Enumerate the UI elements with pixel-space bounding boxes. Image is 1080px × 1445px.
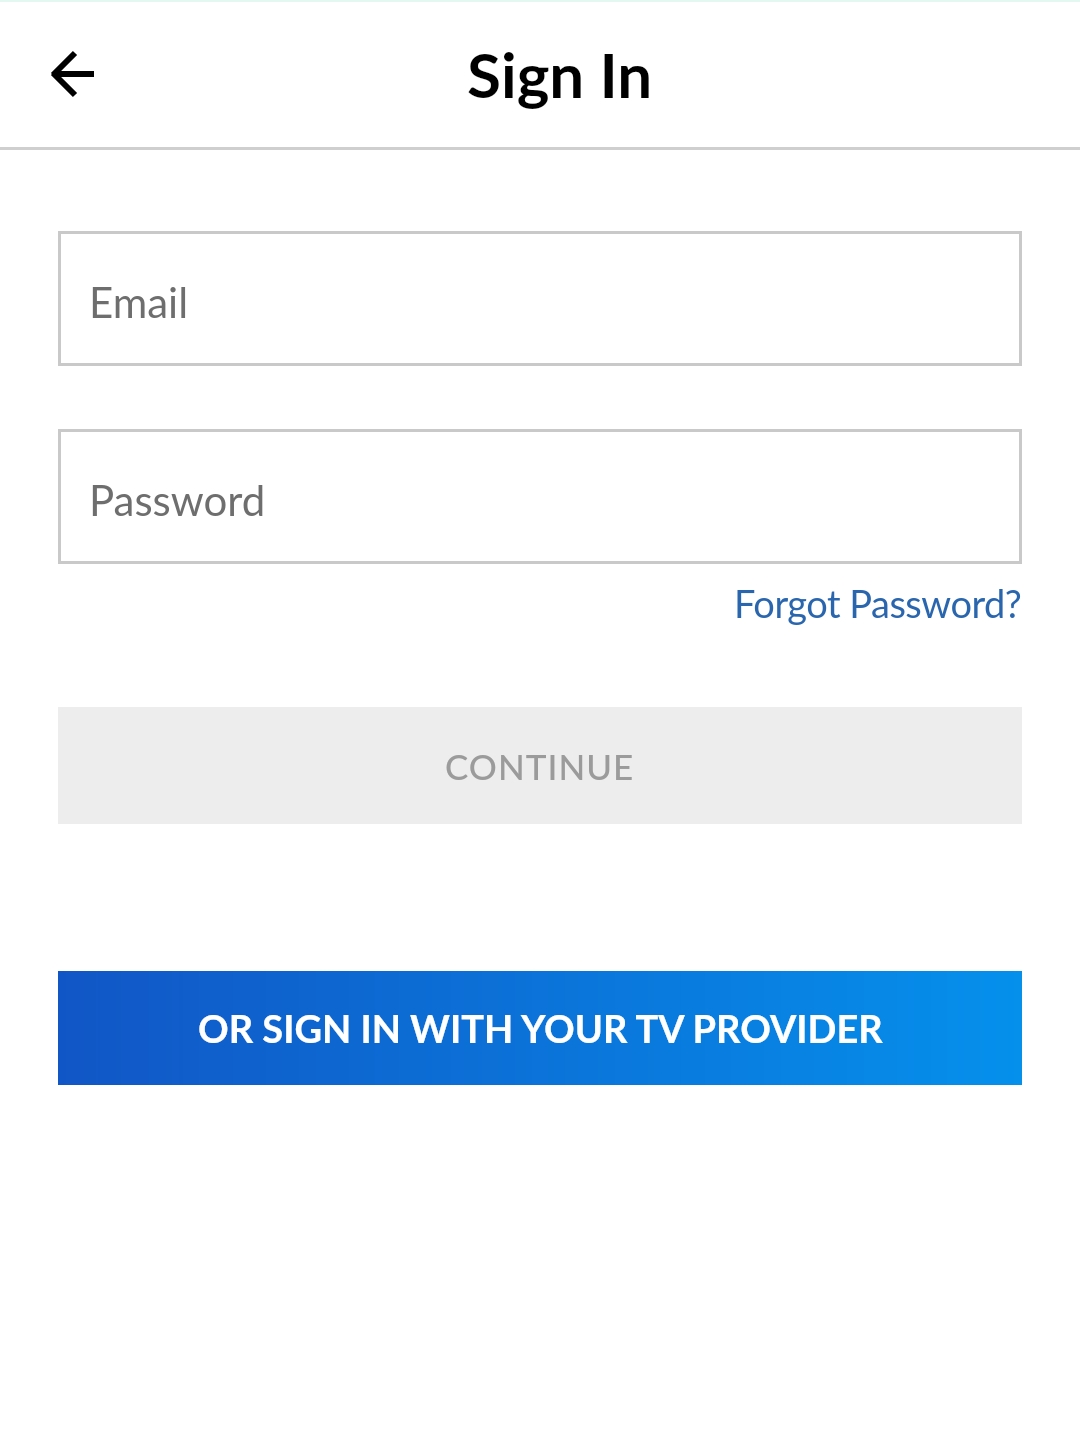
button[interactable]: Password: [58, 429, 1022, 564]
button[interactable]: Email: [58, 231, 1022, 366]
staticText: CONTINUE: [445, 745, 635, 787]
staticText: OR SIGN IN WITH YOUR TV PROVIDER: [198, 1005, 883, 1051]
staticText: Password: [89, 475, 266, 525]
staticText: Sign In: [467, 37, 653, 111]
button[interactable]: [38, 38, 110, 110]
button[interactable]: CONTINUE: [58, 707, 1022, 824]
button[interactable]: OR SIGN IN WITH YOUR TV PROVIDER: [58, 971, 1022, 1085]
staticText: Email: [89, 277, 189, 327]
button[interactable]: Forgot Password?: [734, 580, 1022, 626]
